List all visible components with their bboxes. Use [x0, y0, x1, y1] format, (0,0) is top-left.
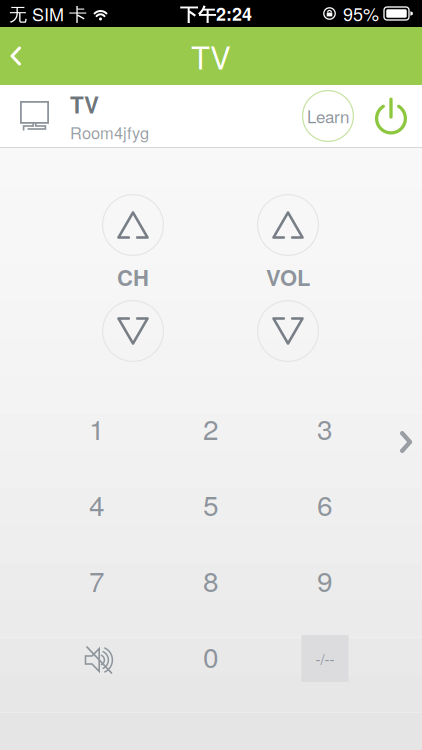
staticText: Room4jfyg: [70, 120, 149, 144]
button[interactable]: Learn: [302, 91, 354, 141]
staticText: 无 SIM 卡: [9, 1, 87, 26]
staticText: 1: [89, 408, 105, 448]
staticText: 0: [203, 636, 219, 676]
staticText: 9: [317, 560, 333, 600]
staticText: 3: [317, 408, 333, 448]
button[interactable]: 9: [268, 542, 382, 618]
staticText: CH: [117, 261, 149, 293]
staticText: -/--: [315, 648, 334, 669]
button[interactable]: 8: [154, 542, 268, 618]
staticText: TV: [70, 88, 99, 120]
button[interactable]: Mute: [40, 618, 154, 694]
button[interactable]: 3: [268, 390, 382, 466]
staticText: 95%: [343, 1, 379, 26]
button[interactable]: 7: [40, 542, 154, 618]
button[interactable]: 0: [154, 618, 268, 694]
staticText: 6: [317, 484, 333, 524]
button[interactable]: Power: [373, 96, 409, 136]
staticText: 4: [89, 484, 105, 524]
button[interactable]: 2: [154, 390, 268, 466]
staticText: 5: [203, 484, 219, 524]
staticText: 下午2:24: [180, 1, 252, 26]
button[interactable]: CH up: [102, 194, 164, 256]
button[interactable]: -/--: [268, 618, 382, 694]
button[interactable]: VOL down: [257, 300, 319, 362]
button[interactable]: VOL up: [257, 194, 319, 256]
button[interactable]: Next page: [388, 419, 422, 465]
button[interactable]: 1: [40, 390, 154, 466]
staticText: VOL: [266, 261, 310, 293]
button[interactable]: Back: [0, 27, 44, 85]
staticText: 7: [89, 560, 105, 600]
button[interactable]: 6: [268, 466, 382, 542]
button[interactable]: 5: [154, 466, 268, 542]
staticText: TV: [191, 34, 231, 78]
button[interactable]: CH down: [102, 300, 164, 362]
button[interactable]: 4: [40, 466, 154, 542]
staticText: Learn: [307, 104, 349, 128]
staticText: 8: [203, 560, 219, 600]
staticText: 2: [203, 408, 219, 448]
